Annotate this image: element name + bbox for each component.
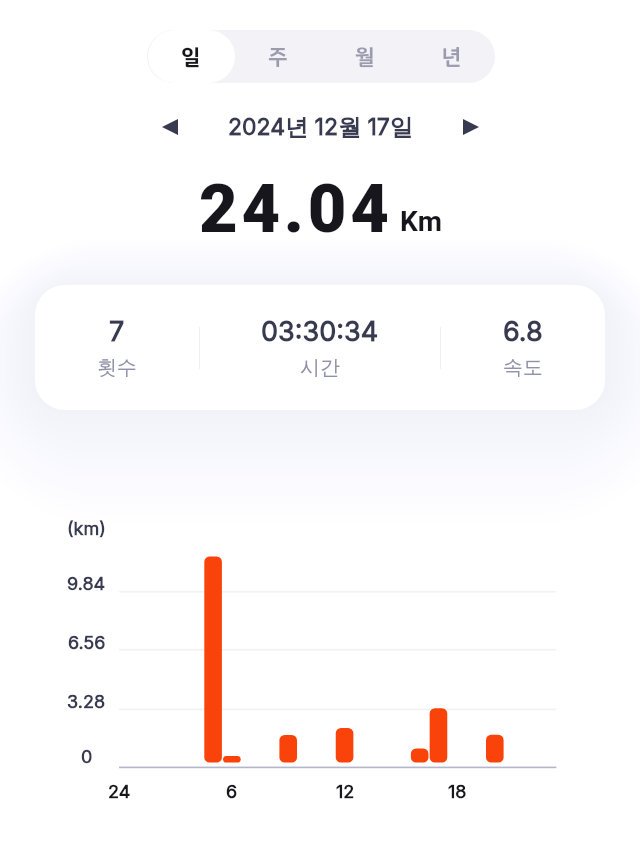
staticText: 일 xyxy=(181,41,201,73)
button[interactable]: Previous day xyxy=(147,104,193,150)
button[interactable]: Next day xyxy=(448,104,494,150)
staticText: (km) xyxy=(67,518,106,540)
staticText: 6.8 xyxy=(503,315,543,348)
button[interactable]: 주 xyxy=(234,30,321,83)
staticText: 9.84 xyxy=(67,573,106,595)
staticText: 7 xyxy=(109,315,125,348)
staticText: 월 xyxy=(355,41,375,73)
button[interactable]: 월 xyxy=(321,30,408,83)
staticText: 횟수 xyxy=(97,355,137,380)
staticText: 3.28 xyxy=(67,691,106,713)
staticText: 6 xyxy=(226,781,238,803)
staticText: 시간 xyxy=(300,355,340,380)
button[interactable]: 년 xyxy=(408,30,495,83)
staticText: 년 xyxy=(442,41,462,73)
staticText: 03:30:34 xyxy=(261,315,379,348)
staticText: 6.56 xyxy=(68,632,106,654)
staticText: 12 xyxy=(336,781,355,803)
staticText: 24.04 xyxy=(199,170,393,240)
staticText: 18 xyxy=(448,781,467,803)
staticText: 2024년 12월 17일 xyxy=(228,113,413,142)
staticText: 24 xyxy=(108,781,131,803)
staticText: 0 xyxy=(81,746,93,768)
staticText: 속도 xyxy=(503,355,543,380)
button[interactable]: 일 xyxy=(147,30,234,83)
staticText: 주 xyxy=(268,41,288,73)
staticText: Km xyxy=(400,205,443,238)
